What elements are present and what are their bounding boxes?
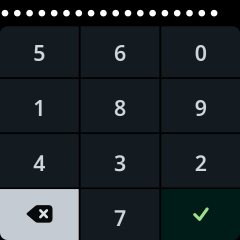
button[interactable]: Confirm passcode — [161, 189, 240, 240]
staticText: 6 — [114, 38, 126, 67]
staticText: 0 — [195, 38, 207, 67]
button[interactable]: 8 — [81, 79, 159, 132]
staticText: 2 — [195, 149, 207, 177]
staticText: 8 — [114, 94, 126, 122]
button[interactable]: 5 — [0, 24, 79, 77]
staticText: 3 — [114, 149, 126, 177]
button[interactable]: 3 — [81, 134, 159, 187]
staticText: 4 — [33, 149, 45, 177]
button[interactable]: 6 — [81, 24, 159, 77]
button[interactable]: 7 — [81, 189, 159, 240]
staticText: 9 — [195, 94, 207, 122]
button[interactable]: 9 — [161, 79, 240, 132]
button[interactable]: 4 — [0, 134, 79, 187]
button[interactable]: Delete — [0, 189, 79, 240]
staticText: 1 — [33, 94, 45, 122]
button[interactable]: 2 — [161, 134, 240, 187]
button[interactable]: 1 — [0, 79, 79, 132]
staticText: 5 — [33, 38, 45, 67]
staticText: 7 — [114, 204, 126, 232]
button[interactable]: 0 — [161, 24, 240, 77]
